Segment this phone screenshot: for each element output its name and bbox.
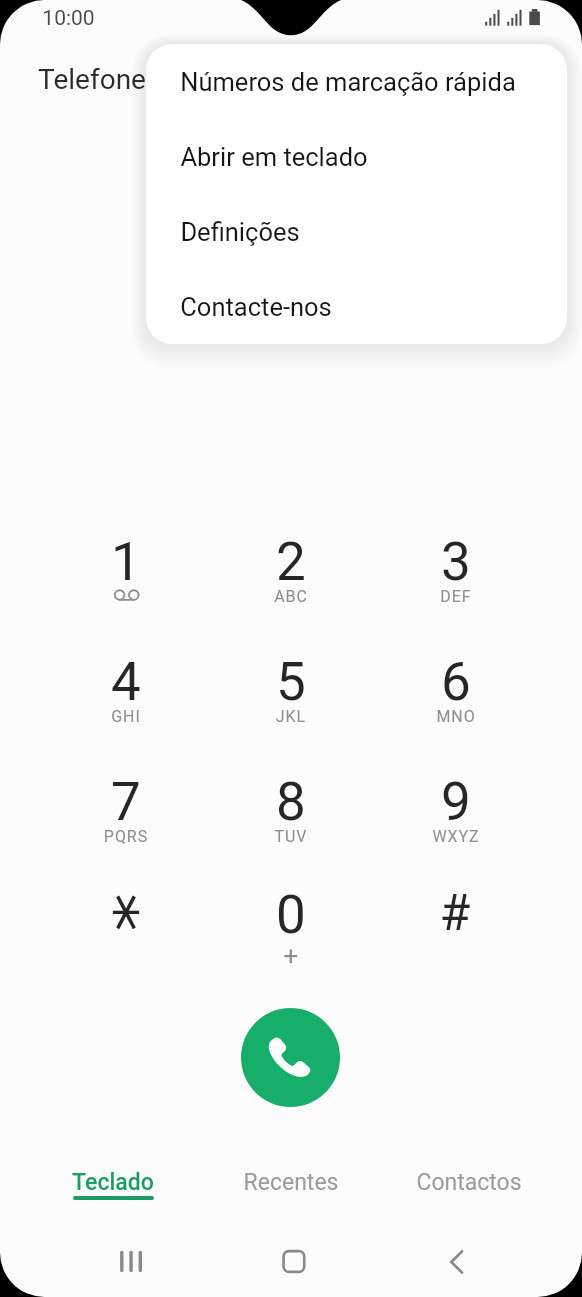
staticText: 7 — [44, 771, 208, 833]
staticText: 1 — [44, 531, 208, 593]
button[interactable]: 3 — [374, 510, 538, 620]
staticText: # — [373, 884, 537, 943]
button[interactable]: 5 — [209, 630, 373, 740]
button[interactable]: 7 — [44, 750, 208, 860]
button[interactable]: 4 — [44, 630, 208, 740]
staticText: TUV — [209, 827, 373, 846]
staticText: Recentes — [202, 1169, 380, 1196]
button[interactable]: 0 — [209, 863, 373, 973]
staticText: DEF — [374, 587, 538, 606]
staticText: Definições — [180, 217, 300, 247]
staticText: 3 — [374, 531, 538, 593]
staticText: 2 — [209, 531, 373, 593]
staticText: ABC — [209, 587, 373, 606]
button[interactable]: Contacte-nos — [146, 269, 567, 344]
button[interactable]: Teclado — [24, 1150, 202, 1212]
button[interactable]: Números de marcação rápida — [146, 44, 567, 119]
staticText: Contactos — [380, 1169, 558, 1196]
staticText: 0 — [209, 884, 373, 946]
staticText: 6 — [374, 651, 538, 713]
staticText: 5 — [209, 651, 373, 713]
staticText: Telefone — [38, 63, 146, 96]
staticText: MNO — [374, 707, 538, 726]
button[interactable]: Recentes — [202, 1150, 380, 1212]
staticText: 10:00 — [42, 6, 95, 31]
button[interactable]: Home — [244, 1228, 344, 1294]
staticText: Contacte-nos — [180, 292, 332, 322]
staticText: Números de marcação rápida — [180, 67, 516, 97]
button[interactable]: Definições — [146, 194, 567, 269]
button[interactable]: # — [374, 863, 538, 973]
staticText: Abrir em teclado — [180, 142, 368, 172]
button[interactable]: * — [44, 863, 208, 973]
staticText: + — [209, 941, 373, 971]
button[interactable]: 2 — [209, 510, 373, 620]
staticText: GHI — [44, 707, 208, 726]
staticText: WXYZ — [374, 827, 538, 846]
staticText: 9 — [374, 771, 538, 833]
button[interactable]: Contactos — [380, 1150, 558, 1212]
staticText: JKL — [209, 707, 373, 726]
button[interactable]: 9 — [374, 750, 538, 860]
staticText: 4 — [44, 651, 208, 713]
button[interactable]: 6 — [374, 630, 538, 740]
button[interactable]: 1 — [44, 510, 208, 620]
button[interactable]: Back — [406, 1228, 506, 1294]
button[interactable]: Call — [241, 1008, 340, 1107]
staticText: PQRS — [44, 827, 208, 846]
button[interactable]: Recent apps — [80, 1228, 180, 1294]
button[interactable]: 8 — [209, 750, 373, 860]
button[interactable]: Abrir em teclado — [146, 119, 567, 194]
staticText: 8 — [209, 771, 373, 833]
staticText: Teclado — [24, 1169, 202, 1196]
